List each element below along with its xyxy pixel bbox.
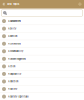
button[interactable]: Accountability [0,48,84,55]
staticText: Abandonment [8,20,21,22]
button[interactable]: Achievement [0,40,84,48]
staticText: Abortion [8,35,17,37]
staticText: Adultery [8,88,17,90]
button[interactable]: Adultery (Spiritual) [0,93,84,100]
staticText: Addiction [8,80,18,83]
staticText: Acknowledgement [8,57,26,60]
button[interactable]: Add topic [78,0,82,9]
staticText: Ability [8,27,16,30]
staticText: Wiki Topics [7,3,19,6]
staticText: Action [8,65,15,68]
button[interactable]: Acknowledgement [0,55,84,63]
staticText: Achievement [8,42,21,45]
staticText: Adultery (Spiritual) [8,95,29,98]
button[interactable]: Addiction [0,78,84,85]
staticText: Adaptability [8,73,21,75]
button[interactable]: Action [0,63,84,70]
button[interactable]: Abortion [0,33,84,40]
button[interactable]: Abandonment [0,17,84,25]
button[interactable]: Back [2,0,6,9]
button[interactable]: Ability [0,25,84,32]
button[interactable]: Adaptability [0,70,84,78]
staticText: Accountability [8,50,23,53]
button[interactable]: Adultery [0,85,84,93]
